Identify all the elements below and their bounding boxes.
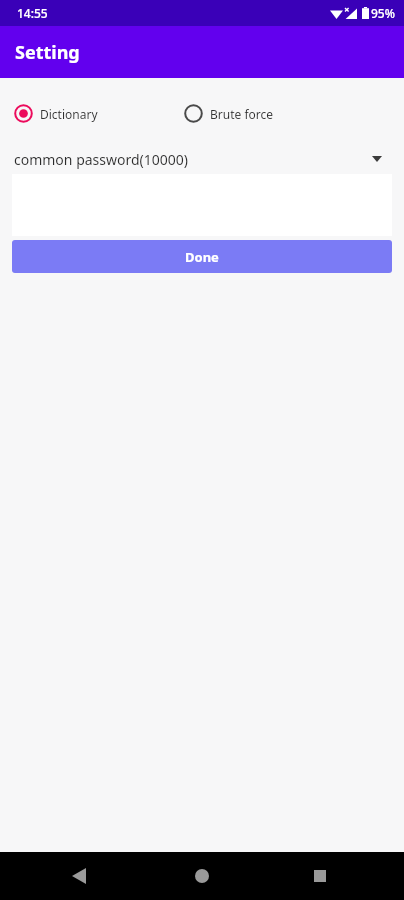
staticText: 14:55 [17,5,48,21]
staticText: common password(10000) [14,150,189,169]
staticText: Done [185,248,219,266]
button[interactable]: Done [12,240,392,273]
button[interactable]: Dictionary [14,104,98,123]
button[interactable]: common password(10000) [12,144,392,174]
button[interactable]: Back [63,860,95,892]
staticText: Brute force [210,106,274,122]
staticText: Setting [15,40,80,65]
button[interactable]: Recent apps [304,860,336,892]
staticText: Dictionary [40,106,98,122]
button[interactable]: Brute force [184,104,274,123]
staticText: 95% [371,5,395,21]
button[interactable]: Home [186,860,218,892]
